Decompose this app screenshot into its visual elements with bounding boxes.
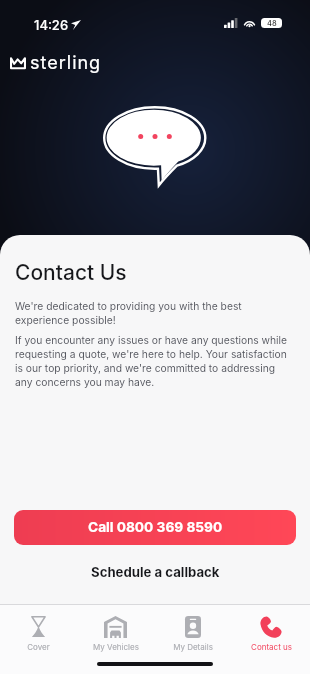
staticText: Cover — [27, 642, 50, 652]
staticText: Contact us — [251, 642, 292, 652]
staticText: Schedule a callback — [91, 564, 220, 580]
staticText: sterling — [30, 52, 102, 74]
button[interactable]: Call 0800 369 8590 — [14, 510, 296, 545]
button[interactable]: Schedule a callback — [0, 558, 310, 586]
staticText: We're dedicated to providing you with th… — [15, 300, 295, 327]
staticText: My Vehicles — [93, 642, 139, 652]
staticText: 14:26 — [34, 17, 69, 33]
button[interactable]: Contact us — [232, 616, 310, 652]
button[interactable]: My Details — [154, 616, 232, 652]
button[interactable]: My Vehicles — [77, 616, 154, 652]
staticText: If you encounter any issues or have any … — [15, 334, 295, 389]
button[interactable]: Cover — [0, 616, 77, 652]
staticText: My Details — [173, 642, 213, 652]
staticText: Contact Us — [15, 260, 127, 285]
staticText: 48 — [267, 19, 277, 28]
staticText: Call 0800 369 8590 — [88, 519, 223, 536]
